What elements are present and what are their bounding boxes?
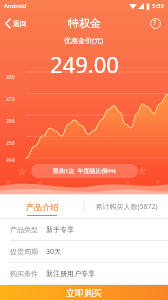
staticText: 提货周期 (10, 247, 38, 256)
staticText: 5:55 (152, 2, 164, 10)
staticText: 返回 (13, 19, 27, 28)
button[interactable]: Help (146, 14, 164, 32)
button[interactable]: 返回 (0, 15, 33, 32)
staticText: 产品类型 (10, 225, 38, 234)
staticText: 优惠金价(元) (64, 36, 104, 46)
button[interactable]: 产品介绍 (0, 196, 83, 218)
staticText: 特权金 (68, 16, 101, 30)
staticText: 限购1次 年度融比例4% (53, 167, 116, 175)
staticText: 新注册用户专享 (46, 269, 95, 278)
staticText: Android (4, 2, 27, 10)
button[interactable]: 提货周期 (0, 241, 168, 262)
staticText: 新手专享 (46, 225, 74, 234)
staticText: 240 (6, 157, 15, 164)
staticText: ? (153, 18, 157, 28)
staticText: 购买条件 (10, 269, 38, 278)
button[interactable]: 累计购买人数(5872) (84, 196, 168, 218)
staticText: 260 (6, 118, 15, 125)
button[interactable]: 产品类型 (0, 219, 168, 240)
staticText: 产品介绍 (26, 202, 58, 212)
button[interactable]: 购买条件 (0, 263, 168, 284)
staticText: 立即购买 (66, 287, 102, 298)
staticText: 累计购买人数(5872) (95, 202, 158, 212)
button[interactable]: 立即购买 (0, 285, 168, 300)
staticText: 249.00 (50, 49, 119, 79)
button[interactable]: 限购1次 年度融比例4% (31, 164, 138, 178)
staticText: 270 (6, 96, 15, 103)
staticText: 250 (6, 140, 15, 147)
staticText: 30天 (46, 247, 62, 257)
staticText: 280 (6, 74, 15, 81)
